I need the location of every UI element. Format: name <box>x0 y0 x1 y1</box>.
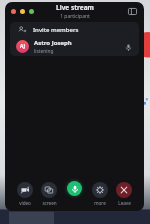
staticText: more <box>94 200 106 206</box>
staticText: Leave <box>118 200 131 206</box>
button[interactable]: AJ <box>10 37 139 56</box>
staticText: Live stream <box>56 3 94 12</box>
button[interactable]: Leave <box>115 181 133 207</box>
staticText: screen <box>42 200 57 206</box>
button[interactable]: Toggle sidebar <box>127 6 138 17</box>
button[interactable]: screen <box>40 181 58 207</box>
button[interactable]: video <box>16 181 34 207</box>
button[interactable]: Microphone <box>123 42 133 52</box>
staticText: Invite members <box>33 26 79 34</box>
button[interactable]: more <box>91 181 109 207</box>
button[interactable]: Maximize <box>29 9 34 14</box>
staticText: Astro Joseph <box>34 39 72 47</box>
button[interactable]: Close <box>11 9 16 14</box>
button[interactable]: Minimize <box>20 9 25 14</box>
button[interactable]: Invite members <box>10 22 139 37</box>
staticText: AJ <box>20 43 26 50</box>
button[interactable]: Mute microphone <box>63 177 86 207</box>
staticText: video <box>19 200 31 206</box>
staticText: listening <box>34 48 54 55</box>
staticText: 1 participant <box>60 13 90 20</box>
